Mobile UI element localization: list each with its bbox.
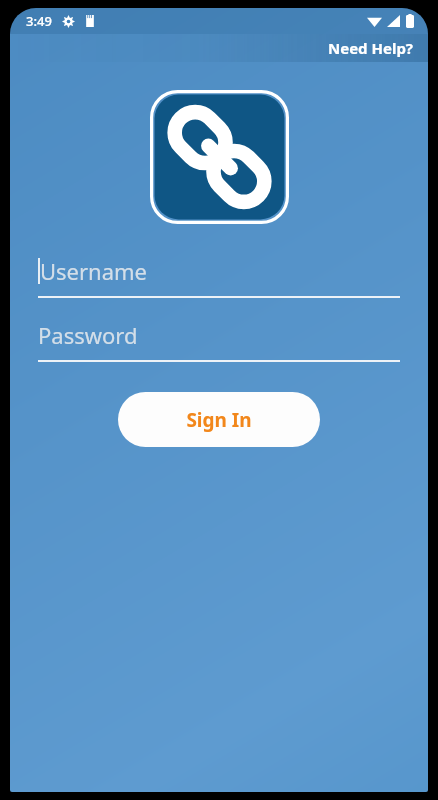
button[interactable]: Username: [38, 256, 400, 298]
staticText: Password: [38, 320, 138, 350]
button[interactable]: Password: [38, 320, 400, 362]
staticText: Sign In: [186, 407, 252, 433]
button[interactable]: Need Help?: [314, 35, 428, 61]
button[interactable]: Sign In: [118, 392, 320, 447]
staticText: Need Help?: [328, 38, 414, 58]
staticText: Username: [40, 256, 148, 286]
staticText: 3:49: [26, 12, 52, 30]
